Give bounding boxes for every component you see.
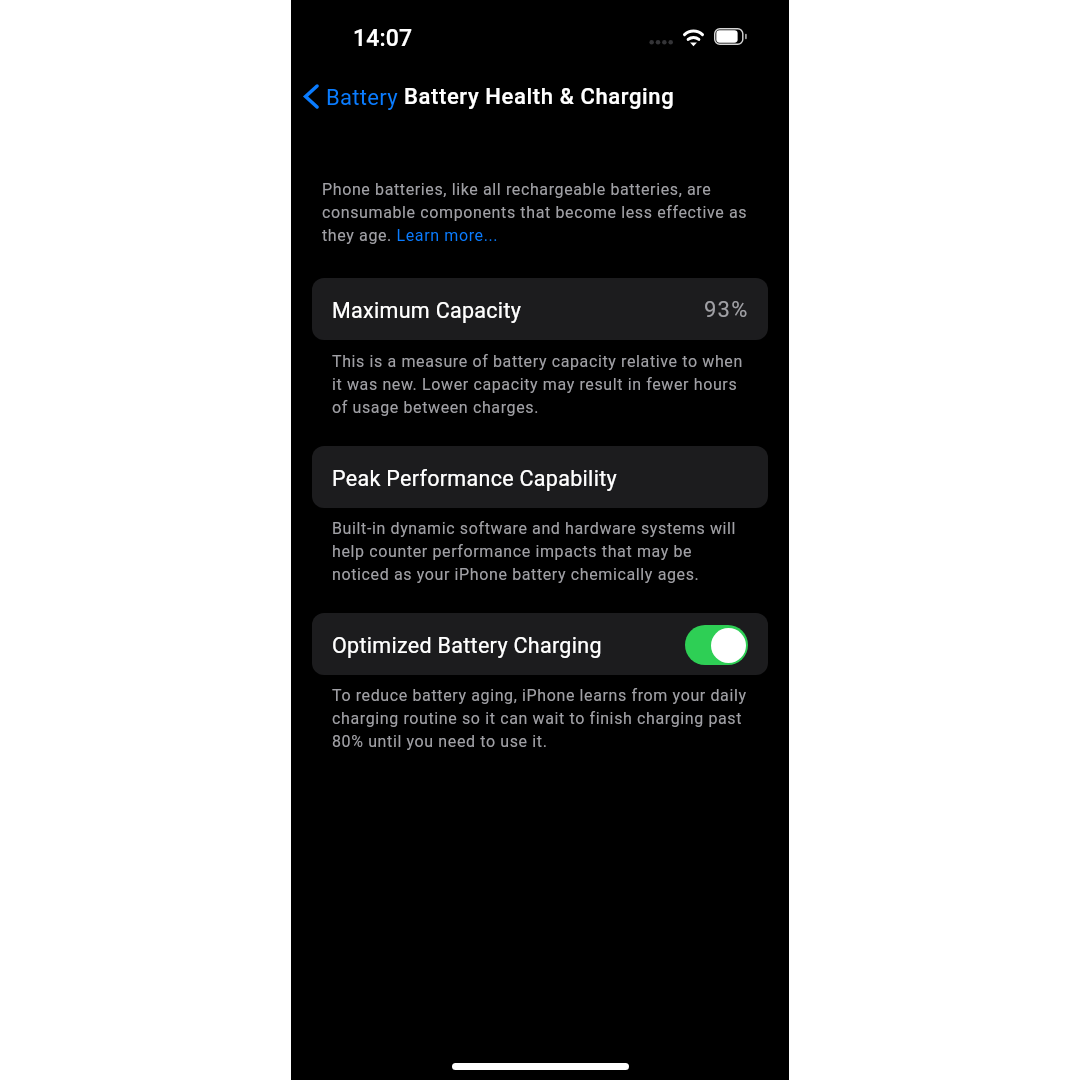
button[interactable]: Battery — [297, 78, 404, 118]
staticText: it was new. Lower capacity may result in… — [332, 375, 738, 394]
staticText: 14:07 — [353, 25, 413, 52]
staticText: This is a measure of battery capacity re… — [332, 352, 743, 371]
button[interactable]: Peak Performance Capability — [312, 446, 768, 508]
staticText: Optimized Battery Charging — [332, 633, 602, 658]
staticText: charging routine so it can wait to finis… — [332, 709, 743, 728]
staticText: noticed as your iPhone battery chemicall… — [332, 565, 700, 584]
staticText: 93% — [704, 297, 749, 323]
staticText: Peak Performance Capability — [332, 466, 617, 491]
button[interactable]: Optimized Battery Charging — [685, 625, 748, 665]
staticText: of usage between charges. — [332, 398, 539, 417]
button[interactable]: Optimized Battery Charging — [312, 613, 768, 675]
staticText: Maximum Capacity — [332, 298, 522, 323]
staticText: consumable components that become less e… — [322, 203, 748, 222]
staticText: help counter performance impacts that ma… — [332, 542, 693, 561]
staticText: Battery Health & Charging — [404, 84, 675, 110]
staticText: they age. Learn more... — [322, 226, 499, 245]
staticText: Phone batteries, like all rechargeable b… — [322, 180, 712, 199]
button[interactable]: Maximum Capacity — [312, 278, 768, 340]
staticText: Built-in dynamic software and hardware s… — [332, 519, 737, 538]
staticText: 80% until you need to use it. — [332, 732, 548, 751]
staticText: To reduce battery aging, iPhone learns f… — [332, 686, 747, 705]
staticText: Battery — [326, 85, 398, 111]
